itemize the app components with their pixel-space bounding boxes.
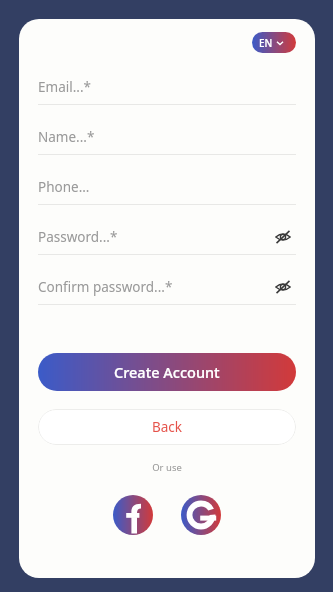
staticText: Password...*: [38, 228, 118, 246]
button[interactable]: EN: [252, 32, 296, 53]
button[interactable]: Phone...: [38, 170, 296, 205]
button[interactable]: Toggle password visibility: [270, 224, 296, 250]
staticText: Email...*: [38, 78, 91, 96]
button[interactable]: Toggle password visibility: [270, 274, 296, 300]
button[interactable]: Password...*: [38, 220, 296, 255]
staticText: Phone...: [38, 178, 90, 196]
button[interactable]: Back: [38, 409, 296, 445]
staticText: EN: [259, 36, 273, 50]
button[interactable]: Sign in with Facebook: [111, 493, 155, 537]
button[interactable]: Confirm password...*: [38, 270, 296, 305]
staticText: Or use: [38, 461, 296, 474]
button[interactable]: Sign in with Google: [179, 493, 223, 537]
staticText: Back: [152, 418, 183, 436]
staticText: Create Account: [114, 362, 220, 382]
staticText: Name...*: [38, 128, 95, 146]
button[interactable]: Email...*: [38, 70, 296, 105]
staticText: Confirm password...*: [38, 278, 173, 296]
button[interactable]: Name...*: [38, 120, 296, 155]
button[interactable]: Create Account: [38, 353, 296, 391]
